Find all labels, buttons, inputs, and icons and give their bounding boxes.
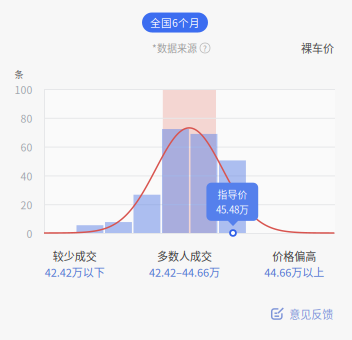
button[interactable]: 意见反馈 — [271, 306, 333, 322]
staticText: ? — [203, 42, 207, 54]
button[interactable]: 全国6个月 — [142, 12, 208, 32]
staticText: 45.48万 — [216, 202, 249, 216]
button[interactable]: *数据来源 — [152, 41, 210, 55]
staticText: *数据来源 — [152, 41, 197, 55]
staticText: 全国6个月 — [150, 15, 200, 30]
staticText: 意见反馈 — [289, 306, 333, 322]
staticText: 价格偏高 — [272, 248, 316, 264]
staticText: 42.42–44.66万 — [149, 264, 220, 280]
staticText: 裸车价 — [301, 40, 334, 56]
staticText: 44.66万以上 — [264, 264, 324, 280]
staticText: 20 — [21, 197, 33, 212]
staticText: 42.42万以下 — [45, 264, 105, 280]
staticText: 较少成交 — [53, 248, 97, 264]
staticText: 40 — [21, 168, 33, 183]
staticText: 指导价 — [217, 187, 247, 201]
staticText: 100 — [15, 82, 33, 97]
staticText: 60 — [21, 139, 33, 155]
staticText: 80 — [21, 111, 33, 126]
staticText: 多数人成交 — [157, 248, 212, 264]
staticText: 条 — [14, 68, 23, 81]
staticText: 0 — [27, 226, 33, 241]
